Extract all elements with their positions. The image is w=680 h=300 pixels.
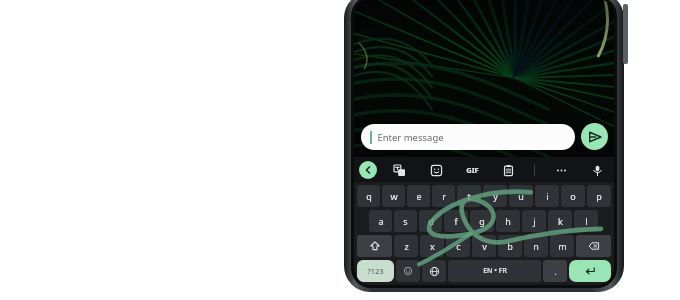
staticText: o	[570, 190, 576, 202]
button[interactable]: Translate	[389, 160, 409, 180]
button[interactable]: Stickers	[426, 160, 446, 180]
button[interactable]: k	[548, 210, 572, 232]
staticText: f	[454, 215, 458, 227]
button[interactable]: Change language	[422, 260, 446, 282]
staticText: ?123	[367, 266, 384, 276]
button[interactable]: e	[407, 185, 430, 207]
staticText: p	[596, 190, 602, 202]
button[interactable]: n	[524, 235, 548, 257]
button[interactable]: GIF	[462, 160, 482, 180]
staticText: w	[390, 190, 398, 202]
button[interactable]: t	[457, 185, 481, 207]
button[interactable]: p	[587, 185, 611, 207]
staticText: b	[507, 240, 513, 252]
staticText: z	[404, 240, 409, 252]
button[interactable]: g	[470, 210, 494, 232]
staticText: EN • FR	[483, 266, 507, 276]
staticText: .	[554, 266, 557, 277]
button[interactable]: v	[472, 235, 496, 257]
staticText: u	[518, 190, 524, 202]
staticText: s	[403, 215, 408, 227]
button[interactable]: c	[446, 235, 470, 257]
button[interactable]: Clipboard	[498, 160, 518, 180]
button[interactable]: z	[394, 235, 418, 257]
button[interactable]: i	[535, 185, 559, 207]
button[interactable]: Enter	[569, 260, 611, 282]
button[interactable]: ?123	[357, 260, 394, 282]
button[interactable]: r	[432, 185, 455, 207]
button[interactable]: f	[444, 210, 468, 232]
button[interactable]: u	[509, 185, 533, 207]
staticText: l	[585, 215, 588, 227]
button[interactable]: a	[369, 210, 392, 232]
staticText: e	[416, 190, 422, 202]
button[interactable]: Emoji	[396, 260, 420, 282]
staticText: n	[533, 240, 539, 252]
button[interactable]: Enter message	[361, 124, 575, 150]
staticText: GIF	[466, 165, 479, 175]
button[interactable]: Shift	[357, 235, 392, 257]
staticText: t	[467, 190, 471, 202]
staticText: g	[479, 215, 485, 227]
button[interactable]: Back	[359, 161, 377, 179]
button[interactable]: m	[550, 235, 574, 257]
button[interactable]: o	[561, 185, 585, 207]
button[interactable]: Send	[581, 123, 608, 150]
staticText: j	[533, 215, 536, 227]
button[interactable]: j	[522, 210, 546, 232]
staticText: h	[505, 215, 511, 227]
button[interactable]: b	[498, 235, 522, 257]
staticText: Enter message	[377, 131, 444, 144]
staticText: r	[442, 190, 446, 202]
button[interactable]: q	[357, 185, 380, 207]
staticText: x	[430, 240, 435, 252]
button[interactable]: w	[382, 185, 405, 207]
button[interactable]: y	[483, 185, 507, 207]
staticText: m	[558, 240, 567, 252]
staticText: v	[482, 240, 487, 252]
button[interactable]: Voice input	[587, 160, 607, 180]
staticText: d	[428, 215, 434, 227]
button[interactable]: Backspace	[576, 235, 611, 257]
button[interactable]: x	[420, 235, 444, 257]
button[interactable]: .	[543, 260, 567, 282]
button[interactable]: More options	[551, 160, 571, 180]
button[interactable]: l	[574, 210, 598, 232]
staticText: c	[456, 240, 461, 252]
staticText: k	[558, 215, 563, 227]
staticText: y	[493, 190, 498, 202]
staticText: a	[378, 215, 384, 227]
button[interactable]: h	[496, 210, 520, 232]
button[interactable]: d	[419, 210, 442, 232]
staticText: q	[366, 190, 372, 202]
staticText: i	[546, 190, 549, 202]
button[interactable]: s	[394, 210, 417, 232]
button[interactable]: EN • FR	[448, 260, 541, 282]
